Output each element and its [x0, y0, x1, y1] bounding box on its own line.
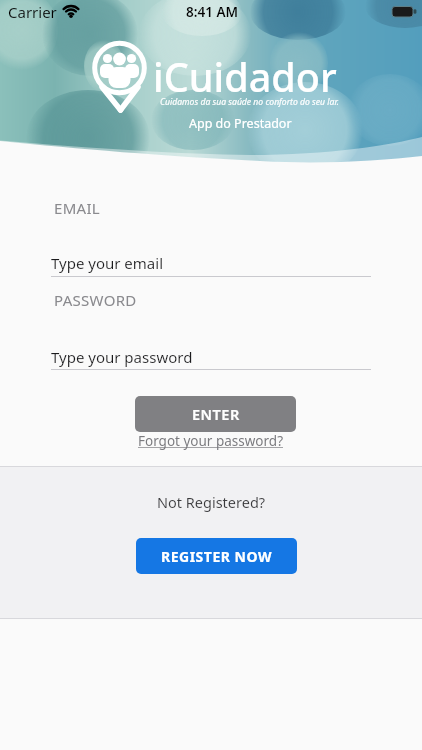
staticText: Type your email — [51, 253, 164, 273]
button[interactable]: Type your password — [45, 342, 377, 372]
staticText: Type your password — [51, 347, 193, 367]
button[interactable]: Forgot your password? — [138, 432, 284, 450]
staticText: Carrier — [8, 2, 57, 22]
staticText: iCuidador — [153, 50, 337, 104]
button[interactable]: REGISTER NOW — [136, 538, 297, 574]
staticText: REGISTER NOW — [161, 547, 272, 566]
staticText: App do Prestador — [189, 115, 292, 132]
button[interactable]: ENTER — [135, 396, 296, 432]
staticText: EMAIL — [54, 198, 100, 218]
staticText: PASSWORD — [54, 290, 137, 310]
staticText: 8:41 AM — [186, 3, 239, 21]
staticText: Cuidamos da sua saúde no conforto do seu… — [160, 96, 339, 108]
staticText: ENTER — [192, 404, 240, 424]
staticText: Forgot your password? — [138, 432, 284, 450]
staticText: Not Registered? — [157, 492, 266, 512]
button[interactable]: Type your email — [45, 248, 377, 278]
